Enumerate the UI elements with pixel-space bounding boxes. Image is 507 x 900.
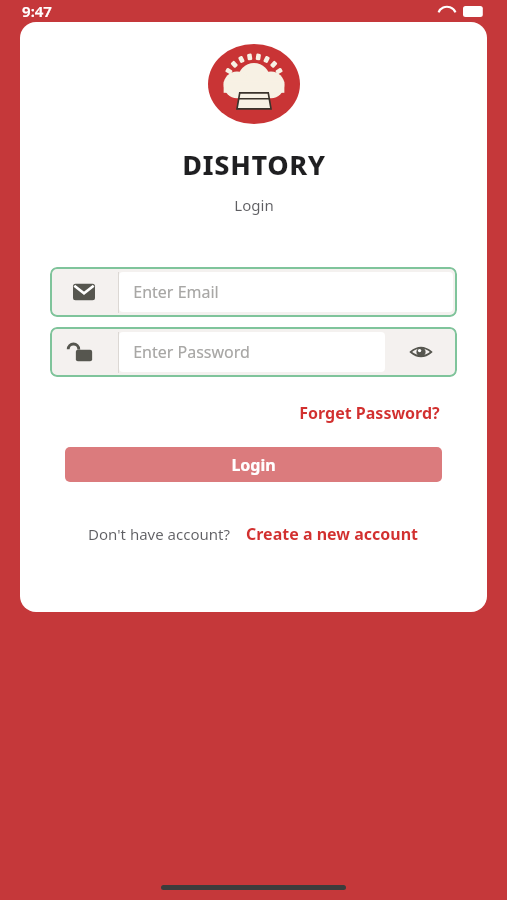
button[interactable]: Show password [385, 327, 457, 377]
button[interactable]: Password [50, 327, 457, 377]
staticText: Enter Email [133, 281, 219, 303]
staticText: Create a new account [246, 523, 418, 545]
staticText: Don't have account? [88, 524, 230, 544]
staticText: Enter Password [133, 341, 250, 363]
button[interactable]: Create a new account [244, 520, 420, 548]
other: Email [50, 267, 118, 317]
staticText: DISHTORY [182, 146, 326, 183]
staticText: Login [231, 454, 276, 476]
button[interactable]: Forget Password? [297, 399, 442, 427]
button[interactable]: Email [50, 267, 457, 317]
staticText: Login [234, 195, 274, 215]
other: Password [50, 327, 118, 377]
button[interactable]: Login [65, 447, 442, 482]
staticText: 9:47 [22, 1, 52, 21]
staticText: Forget Password? [299, 402, 440, 424]
